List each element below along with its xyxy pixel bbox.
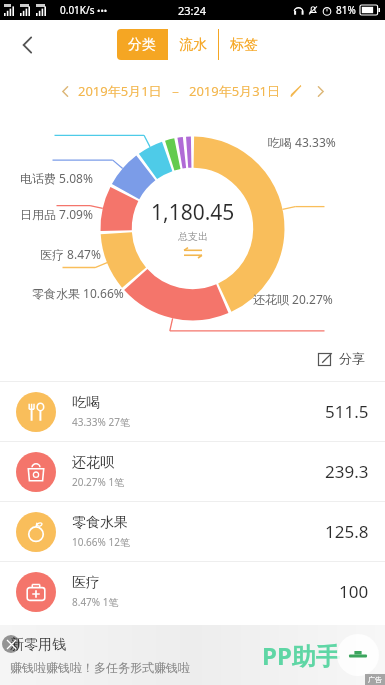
button[interactable]: 分类 (117, 29, 167, 60)
button[interactable]: Edit date (285, 80, 307, 102)
button[interactable]: 标签 (219, 29, 269, 60)
button[interactable]: 分享 (312, 344, 371, 372)
staticText: 20.27% 1笔 (72, 475, 125, 489)
staticText: 239.3 (325, 460, 369, 483)
staticText: 日用品 7.09% (20, 206, 93, 222)
button[interactable]: 零食水果 (0, 502, 385, 561)
staticText: 511.5 (325, 400, 369, 423)
staticText: 流水 (179, 36, 207, 54)
staticText: 赚钱啦赚钱啦！多任务形式赚钱啦 (10, 660, 190, 675)
staticText: 1,180.45 (151, 198, 235, 227)
staticText: 0.01K/s (60, 3, 95, 17)
staticText: 81% (336, 3, 356, 17)
staticText: 吃喝 (72, 394, 100, 412)
staticText: 2019年5月1日 (78, 82, 162, 100)
staticText: 零食水果 (72, 514, 128, 532)
staticText: ••• (97, 4, 108, 16)
button[interactable]: Previous (52, 78, 78, 104)
staticText: 23:24 (178, 3, 207, 18)
staticText: 100 (339, 580, 369, 603)
staticText: 125.8 (325, 520, 369, 543)
button[interactable]: 流水 (168, 29, 218, 60)
staticText: 8.47% 1笔 (72, 595, 119, 609)
staticText: 总支出 (178, 230, 208, 243)
staticText: 标签 (230, 36, 258, 54)
staticText: 医疗 8.47% (40, 246, 101, 262)
staticText: 还花呗 (72, 454, 114, 472)
staticText: 电话费 5.08% (20, 170, 93, 186)
staticText: 分享 (339, 350, 365, 366)
button[interactable]: 医疗 (0, 562, 385, 621)
staticText: 还花呗 20.27% (253, 291, 333, 307)
staticText: 广告 (368, 675, 382, 684)
staticText: 43.33% 27笔 (72, 415, 130, 429)
staticText: － (162, 82, 189, 100)
button[interactable]: Close ad (2, 635, 20, 653)
button[interactable]: Back (6, 23, 50, 67)
staticText: 医疗 (72, 574, 100, 592)
button[interactable]: 新零用钱 (0, 625, 385, 685)
staticText: 零食水果 10.66% (32, 285, 124, 301)
staticText: 分类 (128, 36, 156, 54)
staticText: PP助手 (262, 639, 340, 672)
staticText: 2019年5月31日 (189, 82, 281, 100)
button[interactable]: Next (307, 78, 333, 104)
button[interactable]: 还花呗 (0, 442, 385, 501)
staticText: 吃喝 43.33% (268, 134, 336, 150)
button[interactable]: 吃喝 (0, 382, 385, 441)
staticText: 新零用钱 (10, 636, 66, 654)
staticText: 10.66% 12笔 (72, 535, 130, 549)
